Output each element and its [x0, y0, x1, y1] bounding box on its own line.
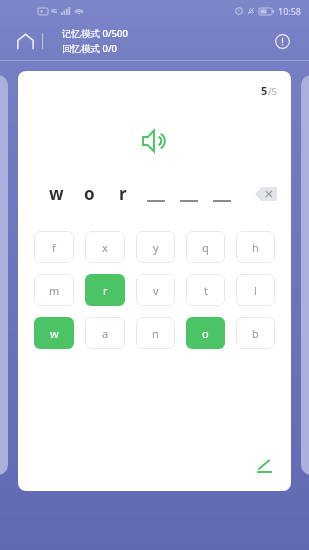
- staticText: w: [50, 326, 59, 341]
- button[interactable]: Backspace: [255, 187, 277, 201]
- staticText: n: [152, 326, 159, 341]
- staticText: 5: [261, 83, 268, 98]
- staticText: x: [102, 240, 108, 255]
- staticText: y: [153, 240, 159, 255]
- staticText: 回忆模式 0/0: [62, 42, 117, 55]
- staticText: o: [202, 326, 209, 341]
- button[interactable]: Home: [8, 24, 42, 58]
- staticText: r: [103, 283, 108, 298]
- staticText: o: [84, 182, 95, 205]
- staticText: w: [49, 182, 64, 205]
- button[interactable]: Info: [267, 26, 297, 56]
- button[interactable]: n: [136, 317, 175, 349]
- button[interactable]: l: [236, 274, 275, 306]
- staticText: h: [252, 240, 259, 255]
- button[interactable]: o: [186, 317, 225, 349]
- staticText: a: [102, 326, 109, 341]
- button[interactable]: Write: [251, 453, 277, 479]
- staticText: v: [153, 283, 159, 298]
- button[interactable]: w: [34, 317, 74, 349]
- button[interactable]: Play pronunciation: [134, 120, 176, 162]
- button[interactable]: f: [34, 231, 74, 263]
- button[interactable]: x: [85, 231, 125, 263]
- staticText: 10:58: [278, 5, 302, 17]
- button[interactable]: a: [85, 317, 125, 349]
- staticText: r: [119, 182, 127, 205]
- staticText: l: [254, 283, 257, 298]
- button[interactable]: h: [236, 231, 275, 263]
- staticText: t: [204, 283, 208, 298]
- button[interactable]: v: [136, 274, 175, 306]
- staticText: q: [202, 240, 209, 255]
- button[interactable]: y: [136, 231, 175, 263]
- staticText: m: [49, 283, 60, 298]
- button[interactable]: m: [34, 274, 74, 306]
- button[interactable]: t: [186, 274, 225, 306]
- button[interactable]: r: [85, 274, 125, 306]
- staticText: b: [252, 326, 259, 341]
- button[interactable]: b: [236, 317, 275, 349]
- staticText: f: [52, 240, 56, 255]
- staticText: 记忆模式 0/500: [62, 27, 128, 40]
- staticText: 4G: [51, 8, 58, 15]
- button[interactable]: q: [186, 231, 225, 263]
- staticText: /5: [268, 85, 277, 98]
